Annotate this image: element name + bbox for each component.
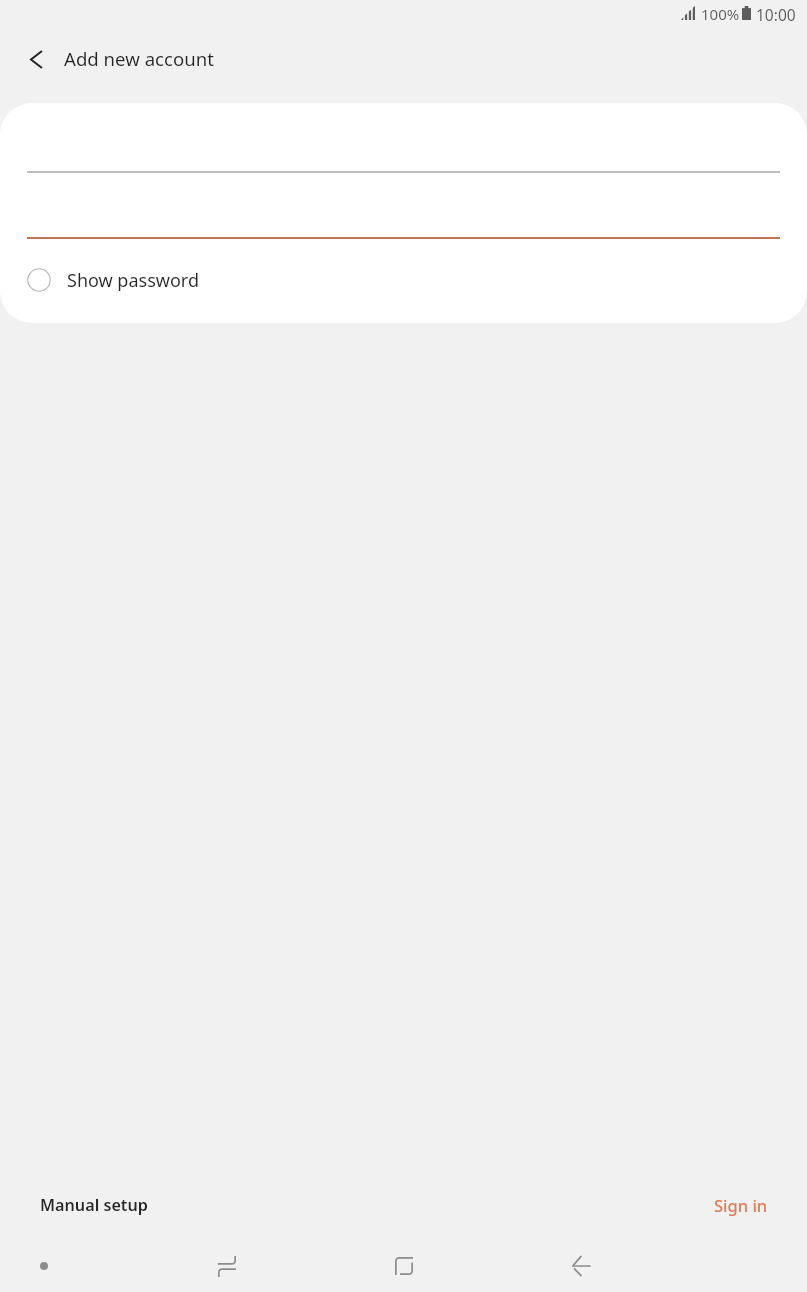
button[interactable]: Manual setup — [40, 1194, 148, 1216]
button[interactable]: Hide keyboard — [23, 1240, 64, 1292]
staticText: 100% — [701, 4, 740, 24]
button[interactable]: Password — [0, 173, 807, 239]
button[interactable]: Navigate up — [0, 31, 64, 91]
button[interactable]: Show password — [0, 255, 807, 305]
staticText: 10:00 — [756, 4, 796, 25]
staticText: Manual setup — [40, 1194, 148, 1216]
staticText: Show password — [67, 268, 199, 293]
button[interactable]: Recent apps — [189, 1240, 265, 1292]
button[interactable]: Home — [366, 1240, 442, 1292]
button[interactable]: Back — [543, 1240, 619, 1292]
staticText: Sign in — [714, 1194, 768, 1216]
staticText: Add new account — [64, 46, 214, 71]
button[interactable]: Email address — [0, 103, 807, 173]
button[interactable]: Sign in — [714, 1194, 768, 1216]
